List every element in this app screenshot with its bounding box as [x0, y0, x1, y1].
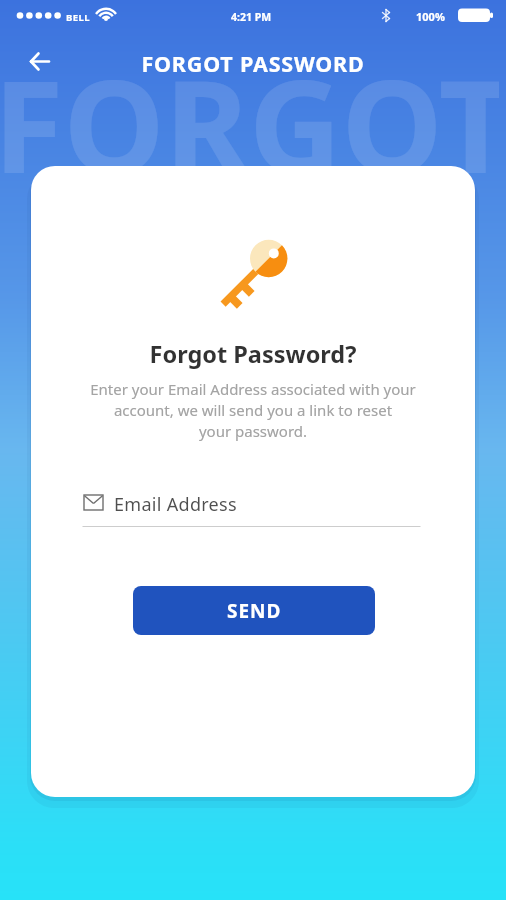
staticText: SEND	[227, 598, 282, 624]
staticText: Email Address	[114, 492, 237, 517]
staticText: 100%	[416, 9, 445, 24]
button[interactable]: Email Address	[76, 481, 422, 531]
staticText: Enter your Email Address associated with…	[31, 379, 475, 442]
staticText: FORGOT PASSWORD	[0, 49, 506, 78]
staticText: FORGOT	[0, 36, 499, 210]
staticText: Forgot Password?	[31, 338, 475, 370]
staticText: BELL	[66, 11, 90, 24]
button[interactable]: SEND	[133, 586, 375, 635]
staticText: 4:21 PM	[0, 10, 504, 24]
button[interactable]	[22, 46, 58, 82]
